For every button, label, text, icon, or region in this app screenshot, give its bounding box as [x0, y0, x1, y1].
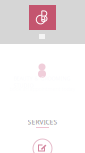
button[interactable]: BG home: [29, 5, 56, 30]
staticText: BEAUTY & GROOMING STUDIO: [13, 75, 71, 89]
staticText: SERVICES: [27, 118, 57, 126]
button[interactable]: Compose: [33, 139, 52, 153]
